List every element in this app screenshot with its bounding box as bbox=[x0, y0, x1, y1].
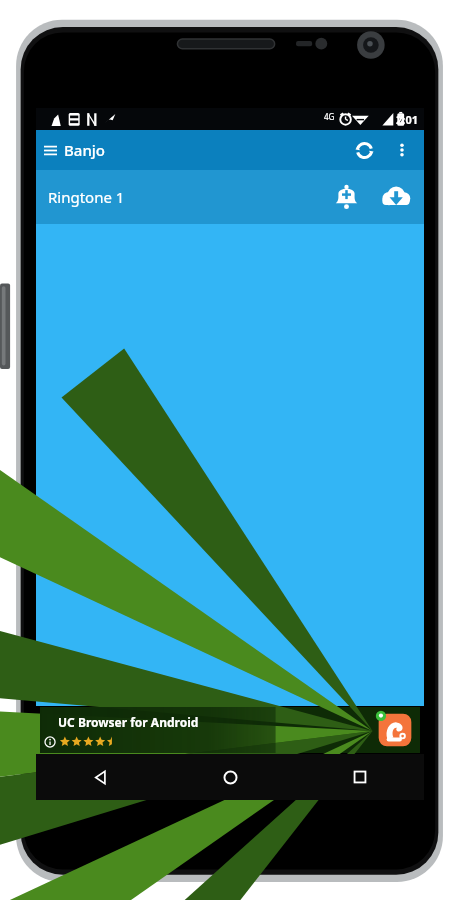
button[interactable]: Recent apps bbox=[295, 754, 424, 800]
button[interactable]: Set as ringtone bbox=[322, 173, 370, 221]
staticText: 2:01 bbox=[396, 112, 418, 127]
button[interactable]: Refresh bbox=[344, 130, 384, 170]
staticText: Banjo bbox=[64, 140, 106, 160]
staticText: Ringtone 1 bbox=[48, 187, 125, 207]
button[interactable]: Download bbox=[370, 171, 422, 223]
staticText: 4G bbox=[324, 111, 335, 122]
button[interactable]: Back bbox=[36, 754, 166, 800]
button[interactable]: Home bbox=[166, 754, 295, 800]
button[interactable]: More options bbox=[384, 132, 420, 168]
button[interactable]: Advertisement: UC Browser for Android bbox=[36, 706, 424, 754]
button[interactable]: Banjo bbox=[36, 134, 114, 166]
staticText: UC Browser for Android bbox=[58, 714, 199, 730]
button[interactable]: Ringtone 1 bbox=[36, 170, 424, 224]
